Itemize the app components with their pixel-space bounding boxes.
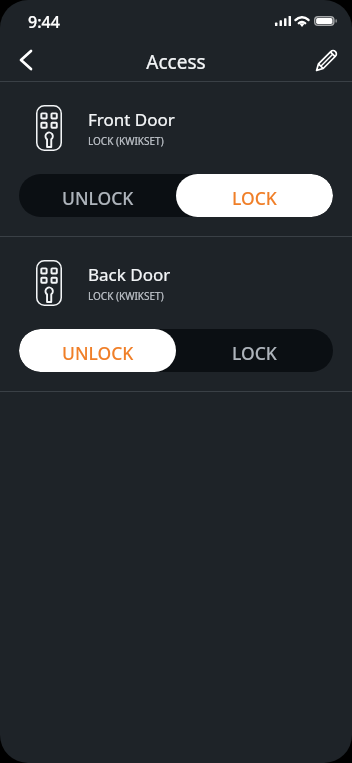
staticText: UNLOCK (62, 341, 134, 365)
staticText: LOCK (232, 186, 277, 210)
staticText: LOCK (KWIKSET) (88, 134, 164, 148)
staticText: LOCK (232, 341, 277, 365)
button[interactable]: LOCK (176, 174, 333, 217)
staticText: LOCK (KWIKSET) (88, 289, 164, 303)
button[interactable]: Back (0, 44, 44, 81)
staticText: Front Door (88, 108, 175, 131)
staticText: 9:44 (28, 11, 60, 33)
staticText: Back Door (88, 263, 171, 286)
button[interactable]: UNLOCK (19, 174, 176, 217)
button[interactable]: LOCK (176, 329, 333, 372)
button[interactable]: UNLOCK (19, 329, 176, 372)
button[interactable]: Edit (308, 44, 352, 81)
staticText: UNLOCK (62, 186, 134, 210)
staticText: Access (146, 49, 206, 75)
